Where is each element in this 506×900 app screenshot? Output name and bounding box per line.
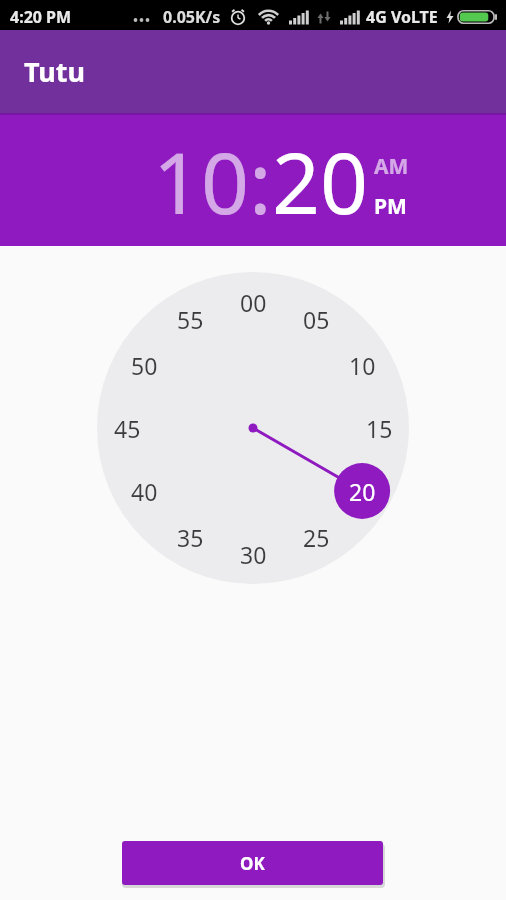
button[interactable]: 30 [230,531,276,577]
button[interactable]: 40 [121,468,167,514]
staticText: 4:20 PM [10,6,72,28]
button[interactable]: 45 [104,405,150,451]
button[interactable]: AM [374,152,409,181]
staticText: OK [240,852,265,875]
staticText: AM [374,152,409,181]
staticText: Tutu [24,53,86,90]
button[interactable]: 20 [272,124,369,238]
staticText: 40 [131,476,158,507]
button[interactable]: 50 [121,342,167,388]
staticText: 10: [153,124,272,238]
button[interactable]: 35 [167,514,213,560]
button[interactable]: 10 [339,342,385,388]
staticText: 15 [366,413,393,444]
staticText: 45 [114,413,141,444]
button[interactable]: PM [374,192,407,221]
staticText: 50 [131,350,158,381]
button[interactable]: 15 [356,405,402,451]
staticText: 30 [240,539,267,570]
staticText: 25 [303,522,330,553]
button[interactable]: 00 [230,279,276,325]
staticText: 35 [177,522,204,553]
staticText: 20 [349,476,376,507]
staticText: 00 [240,287,267,318]
button[interactable]: 55 [167,296,213,342]
button[interactable]: 05 [293,296,339,342]
button[interactable]: 10: [153,124,272,238]
staticText: 05 [303,304,330,335]
button[interactable]: OK [122,841,383,885]
staticText: 0.05K/s [163,6,221,28]
staticText: PM [374,192,407,221]
staticText: 55 [177,304,204,335]
staticText: 10 [349,350,376,381]
staticText: 20 [272,124,369,238]
button[interactable]: 25 [293,514,339,560]
staticText: 4G VoLTE [366,6,438,28]
button[interactable]: 20 [339,468,385,514]
